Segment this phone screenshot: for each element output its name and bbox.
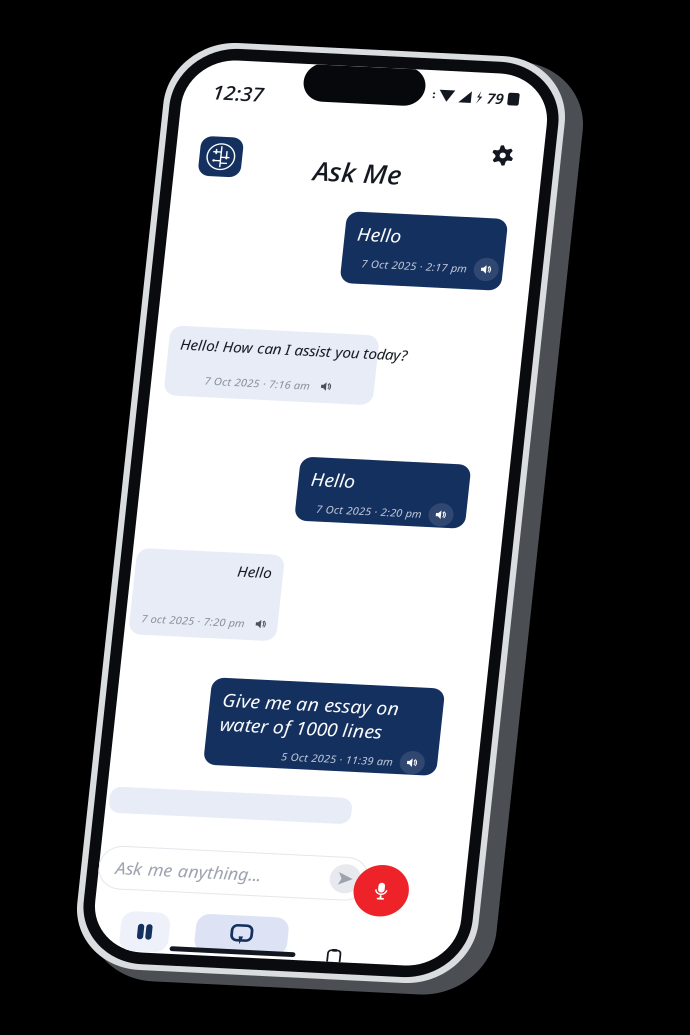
button[interactable]: Voice input: [246, 818, 299, 871]
staticText: 7 oct 2025 · 7:20 pm: [15, 570, 114, 584]
button[interactable]: Hello: [151, 403, 315, 469]
staticText: Give me an essay on water of 1000 lines: [101, 644, 271, 694]
staticText: Hello! How can I assist you today?: [24, 284, 242, 303]
staticText: Ask me anything...: [16, 822, 156, 845]
staticText: 5 Oct 2025 · 11:39 am: [163, 704, 270, 719]
button[interactable]: Give me an essay on water of 1000 lines: [89, 634, 313, 724]
button[interactable]: Hello: [4, 505, 146, 594]
button[interactable]: Settings: [296, 67, 330, 101]
button[interactable]: Hello: [170, 149, 325, 223]
staticText: 7 Oct 2025 · 7:16 am: [51, 323, 152, 337]
staticText: Ask Me: [133, 91, 218, 126]
staticText: Hello: [182, 159, 225, 184]
button[interactable]: Ask me anything...: [0, 812, 259, 856]
button[interactable]: Chat: [99, 877, 188, 917]
staticText: Hello: [102, 514, 135, 533]
button[interactable]: History: [222, 899, 246, 929]
button[interactable]: Hello! How can I assist you today?: [13, 275, 214, 347]
